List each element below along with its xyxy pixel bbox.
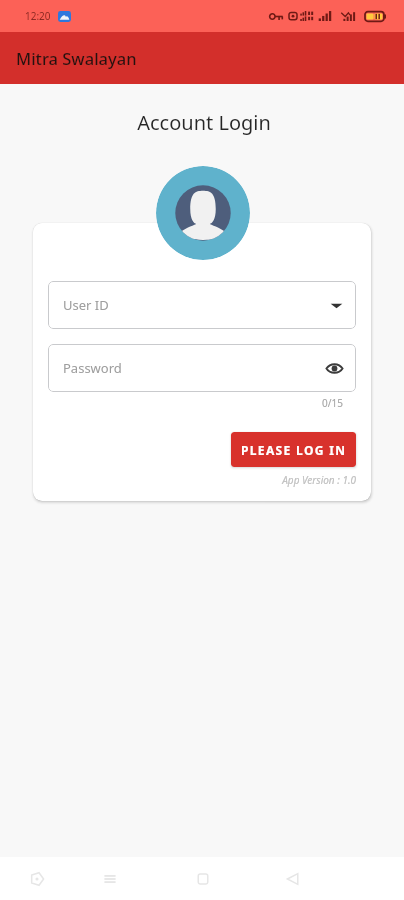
staticText: Mitra Swalayan <box>16 47 137 69</box>
button[interactable]: Recents <box>88 857 132 900</box>
staticText: Password <box>63 359 122 377</box>
button[interactable]: Home <box>181 857 225 900</box>
staticText: PLEASE LOG IN <box>241 442 347 458</box>
button[interactable]: User ID <box>48 281 356 329</box>
other: Show password <box>326 360 343 377</box>
other: Open dropdown <box>330 299 343 312</box>
button[interactable]: PLEASE LOG IN <box>231 432 356 467</box>
staticText: Account Login <box>2 109 404 136</box>
staticText: 12:20 <box>25 9 51 23</box>
staticText: App Version : 1.0 <box>48 473 356 487</box>
button[interactable]: Assistant <box>15 857 59 900</box>
staticText: User ID <box>63 296 109 314</box>
staticText: 0/15 <box>48 396 343 410</box>
button[interactable]: Back <box>271 857 315 900</box>
button[interactable]: Account avatar <box>156 166 250 260</box>
button[interactable]: Password <box>48 344 356 392</box>
